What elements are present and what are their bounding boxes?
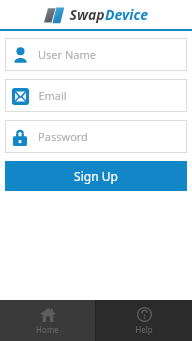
staticText: Sign Up: [74, 168, 118, 184]
staticText: Password: [38, 129, 88, 144]
staticText: Email: [38, 88, 67, 103]
button[interactable]: Sign Up: [5, 161, 187, 191]
button[interactable]: Home: [0, 300, 95, 341]
staticText: Device: [105, 5, 148, 24]
staticText: Help: [135, 324, 153, 335]
staticText: Swap: [69, 5, 105, 24]
other: Help: [137, 307, 152, 322]
button[interactable]: Help: [96, 300, 192, 341]
staticText: User Name: [38, 47, 96, 62]
other: Home: [40, 308, 56, 322]
staticText: Home: [36, 324, 59, 335]
button[interactable]: Password: [5, 120, 187, 153]
button[interactable]: Email: [5, 79, 187, 112]
button[interactable]: User Name: [5, 38, 187, 71]
